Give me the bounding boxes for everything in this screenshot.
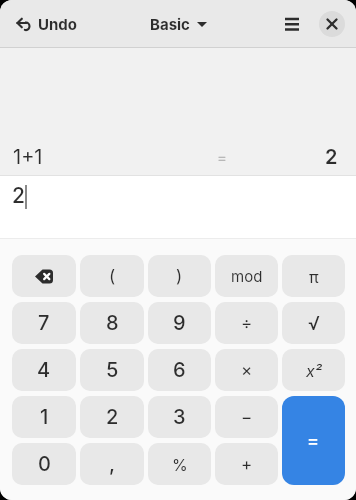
staticText: ) (176, 266, 183, 287)
staticText: ( (109, 266, 116, 287)
staticText: 2 (106, 405, 119, 429)
button[interactable]: ) (148, 255, 211, 297)
button[interactable]: 7 (12, 302, 76, 344)
staticText: 2 (12, 183, 25, 208)
staticText: ÷ (241, 313, 253, 334)
button[interactable]: 8 (80, 302, 144, 344)
staticText: × (241, 360, 253, 381)
button[interactable]: √ (282, 302, 345, 344)
button[interactable]: 3 (148, 396, 211, 438)
staticText: 1+1 (13, 145, 43, 169)
button[interactable] (319, 11, 345, 37)
button[interactable]: x² (282, 349, 345, 391)
staticText: mod (231, 267, 263, 285)
button[interactable]: % (148, 443, 211, 485)
staticText: 6 (173, 358, 186, 382)
button[interactable]: 1 (12, 396, 76, 438)
button[interactable]: Undo (10, 9, 83, 39)
staticText: 3 (173, 405, 186, 429)
staticText: = (307, 430, 320, 452)
button[interactable]: 4 (12, 349, 76, 391)
button[interactable]: ( (80, 255, 144, 297)
staticText: 5 (106, 358, 119, 382)
staticText: Basic (150, 15, 190, 33)
button[interactable]: ÷ (215, 302, 278, 344)
staticText: 9 (173, 311, 186, 335)
button[interactable]: , (80, 443, 144, 485)
button[interactable]: − (215, 396, 278, 438)
staticText: π (309, 267, 319, 286)
staticText: √ (308, 312, 320, 335)
button[interactable]: 5 (80, 349, 144, 391)
button[interactable]: 0 (12, 443, 76, 485)
staticText: 7 (38, 311, 50, 335)
staticText: − (241, 407, 253, 428)
button[interactable]: 2 (80, 396, 144, 438)
staticText: 4 (37, 358, 51, 382)
button[interactable]: mod (215, 255, 278, 297)
staticText: % (172, 455, 188, 474)
staticText: + (241, 454, 253, 475)
staticText: 2 (325, 145, 338, 169)
staticText: 1 (40, 405, 49, 429)
staticText: = (217, 148, 227, 166)
staticText: , (109, 452, 116, 476)
button[interactable]: 6 (148, 349, 211, 391)
button[interactable] (12, 255, 76, 297)
button[interactable]: + (215, 443, 278, 485)
staticText: Undo (38, 15, 77, 33)
button[interactable] (276, 7, 308, 41)
button[interactable]: = (282, 396, 345, 485)
button[interactable]: π (282, 255, 345, 297)
button[interactable]: 9 (148, 302, 211, 344)
button[interactable]: × (215, 349, 278, 391)
staticText: x² (306, 361, 322, 380)
button[interactable]: Basic (144, 9, 213, 39)
staticText: 8 (106, 311, 119, 335)
staticText: 0 (38, 452, 51, 476)
